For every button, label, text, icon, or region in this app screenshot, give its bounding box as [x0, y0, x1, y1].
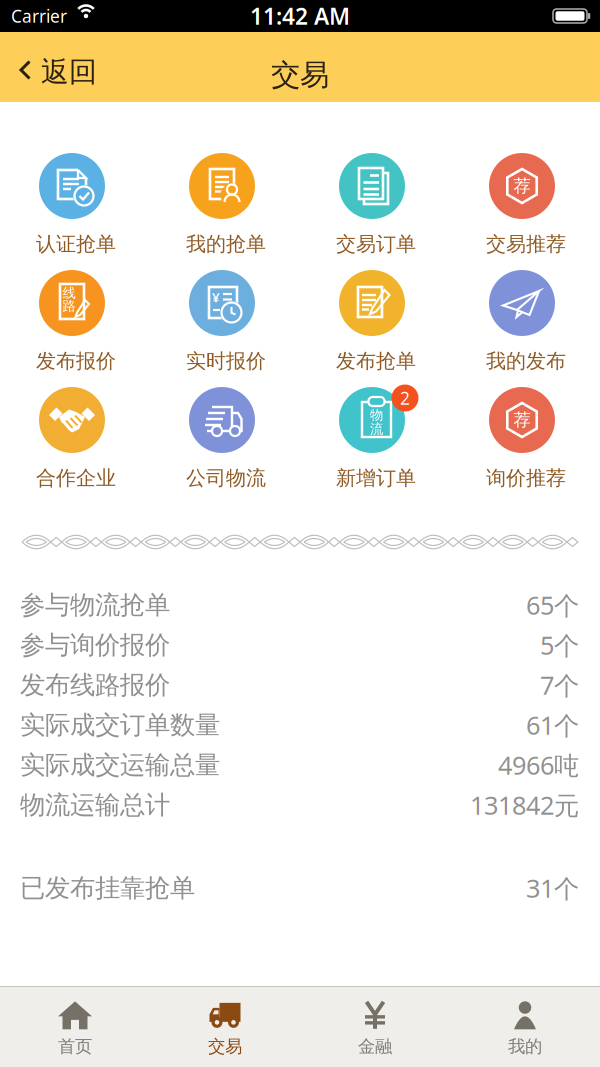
- staticText: 金融: [358, 1036, 392, 1057]
- staticText: 参与询价报价: [20, 629, 170, 660]
- staticText: 发布抢单: [336, 349, 416, 373]
- staticText: 实际成交订单数量: [20, 709, 220, 740]
- button[interactable]: 线: [0, 270, 147, 374]
- staticText: 荐: [513, 409, 530, 431]
- staticText: 首页: [58, 1036, 92, 1057]
- button[interactable]: 交易: [150, 985, 300, 1067]
- staticText: 交易订单: [336, 232, 416, 256]
- staticText: 已发布挂靠抢单: [20, 872, 195, 903]
- staticText: 65个: [526, 588, 579, 622]
- staticText: 返回: [41, 55, 97, 89]
- staticText: 新增订单: [336, 466, 416, 490]
- button[interactable]: 我的发布: [447, 270, 597, 374]
- staticText: 物: [370, 407, 383, 423]
- button[interactable]: 荐: [447, 387, 597, 491]
- staticText: ¥: [212, 288, 220, 306]
- staticText: 线: [62, 285, 75, 301]
- staticText: 合作企业: [36, 466, 116, 490]
- button[interactable]: 荐: [447, 153, 597, 257]
- staticText: 2: [400, 386, 410, 409]
- button[interactable]: ¥: [147, 270, 297, 374]
- staticText: 4966吨: [498, 748, 579, 782]
- staticText: 交易: [271, 57, 329, 93]
- staticText: 我的抢单: [186, 232, 266, 256]
- staticText: 实际成交运输总量: [20, 749, 220, 780]
- staticText: 发布线路报价: [20, 669, 170, 700]
- button[interactable]: 物: [297, 387, 447, 491]
- staticText: 荐: [513, 175, 530, 197]
- button[interactable]: 我的: [450, 985, 600, 1067]
- button[interactable]: 合作企业: [0, 387, 147, 491]
- staticText: 5个: [540, 628, 579, 662]
- button[interactable]: Back: [0, 50, 97, 84]
- staticText: 31个: [526, 871, 579, 905]
- staticText: 询价推荐: [486, 466, 566, 490]
- button[interactable]: 发布抢单: [297, 270, 447, 374]
- staticText: 交易: [208, 1036, 242, 1057]
- staticText: 我的发布: [486, 349, 566, 373]
- staticText: 61个: [526, 708, 579, 742]
- staticText: Carrier: [11, 4, 67, 27]
- staticText: 交易推荐: [486, 232, 566, 256]
- staticText: 物流运输总计: [20, 789, 170, 820]
- staticText: 路: [62, 298, 75, 314]
- staticText: 流: [370, 421, 383, 437]
- staticText: 认证抢单: [36, 232, 116, 256]
- staticText: 公司物流: [186, 466, 266, 490]
- staticText: 11:42 AM: [250, 1, 350, 31]
- staticText: 131842元: [470, 788, 579, 822]
- button[interactable]: 首页: [0, 985, 150, 1067]
- button[interactable]: 我的抢单: [147, 153, 297, 257]
- staticText: 参与物流抢单: [20, 589, 170, 620]
- button[interactable]: 金融: [300, 985, 450, 1067]
- staticText: 发布报价: [36, 349, 116, 373]
- button[interactable]: 公司物流: [147, 387, 297, 491]
- button[interactable]: 认证抢单: [0, 153, 147, 257]
- staticText: 实时报价: [186, 349, 266, 373]
- staticText: 我的: [508, 1036, 542, 1057]
- button[interactable]: 交易订单: [297, 153, 447, 257]
- staticText: 7个: [540, 668, 579, 702]
